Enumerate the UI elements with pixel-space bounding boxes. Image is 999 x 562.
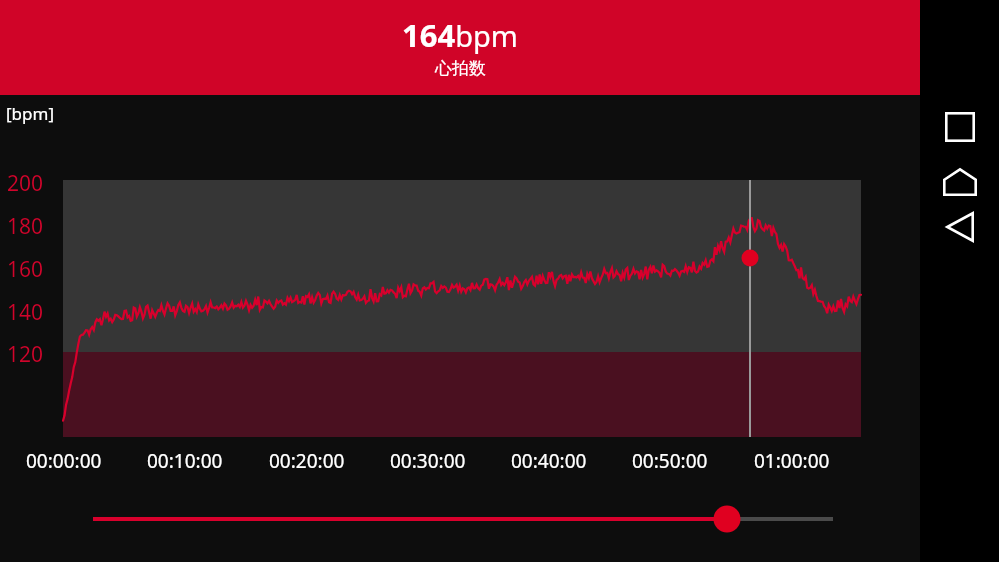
staticText: 140 (7, 298, 44, 327)
button[interactable]: Home (920, 158, 999, 206)
button[interactable]: 164bpm (0, 0, 920, 95)
staticText: 00:20:00 (269, 448, 345, 474)
staticText: 200 (7, 169, 44, 198)
staticText: 160 (7, 255, 44, 284)
staticText: 00:00:00 (26, 448, 102, 474)
button[interactable]: Session time slider (80, 498, 850, 540)
staticText: [bpm] (6, 102, 54, 125)
button[interactable]: Recent apps (920, 103, 999, 151)
staticText: 120 (7, 340, 44, 369)
staticText: 00:50:00 (632, 448, 708, 474)
staticText: 心拍数 (435, 58, 486, 79)
staticText: 00:30:00 (390, 448, 466, 474)
staticText: 01:00:00 (754, 448, 830, 474)
button[interactable]: Back (920, 203, 999, 251)
staticText: 180 (7, 212, 44, 241)
staticText: 00:10:00 (147, 448, 223, 474)
staticText: 00:40:00 (511, 448, 587, 474)
staticText: 164bpm (402, 14, 518, 56)
